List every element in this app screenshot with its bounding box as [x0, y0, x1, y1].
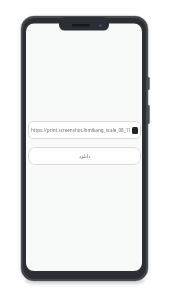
button[interactable]: دانلود — [28, 147, 141, 165]
button[interactable]: https://print.screenshot.lhmikang_scale_… — [28, 121, 141, 139]
staticText: دانلود — [79, 153, 91, 159]
staticText: https://print.screenshot.lhmikang_scale_… — [31, 127, 130, 133]
